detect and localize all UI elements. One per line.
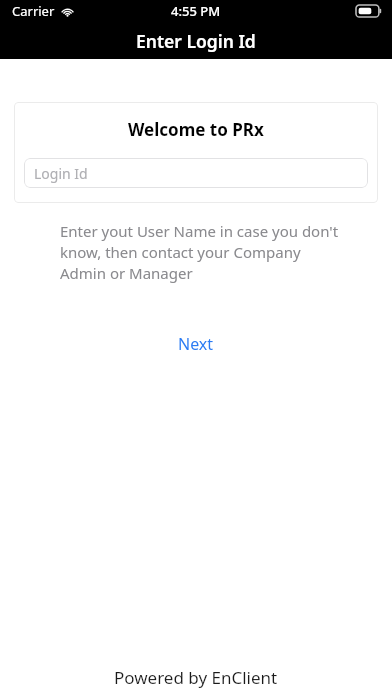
button[interactable]: Next bbox=[164, 329, 228, 359]
staticText: Powered by EnClient bbox=[114, 666, 278, 689]
staticText: Enter Login Id bbox=[136, 29, 256, 53]
staticText: Carrier bbox=[12, 2, 55, 20]
staticText: Welcome to PRx bbox=[128, 118, 264, 141]
staticText: Next bbox=[178, 333, 214, 355]
button[interactable]: Login Id bbox=[24, 158, 368, 188]
staticText: Login Id bbox=[34, 164, 88, 183]
staticText: Enter yout User Name in case you don't k… bbox=[60, 221, 340, 284]
staticText: 4:55 PM bbox=[171, 2, 221, 20]
other: Wi-Fi signal bbox=[60, 6, 75, 17]
other: Battery level bbox=[356, 5, 382, 17]
